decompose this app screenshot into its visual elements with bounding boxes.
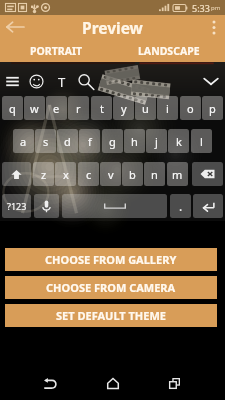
staticText: c — [86, 167, 92, 182]
button[interactable]: Voice input — [34, 194, 59, 218]
staticText: 5:33 — [192, 2, 210, 14]
button[interactable]: s — [35, 129, 56, 153]
button[interactable]: Home — [96, 366, 130, 400]
button[interactable]: LANDSCAPE — [112, 39, 225, 62]
staticText: m — [172, 167, 183, 182]
button[interactable]: Text style — [53, 73, 70, 90]
staticText: x — [63, 167, 69, 182]
button[interactable]: n — [144, 162, 165, 186]
staticText: ?123 — [7, 200, 27, 212]
button[interactable]: y — [113, 96, 134, 120]
button[interactable]: j — [146, 129, 167, 153]
button[interactable]: f — [79, 129, 100, 153]
button[interactable]: Back — [0, 15, 30, 39]
button[interactable]: u — [135, 96, 156, 120]
staticText: p — [209, 101, 216, 116]
button[interactable]: p — [202, 96, 223, 120]
staticText: y — [121, 101, 127, 116]
button[interactable]: Back — [33, 366, 67, 400]
button[interactable]: k — [168, 129, 189, 153]
button[interactable]: l — [191, 129, 212, 153]
button[interactable]: g — [102, 129, 123, 153]
button[interactable]: Shift — [2, 162, 31, 186]
staticText: f — [88, 134, 92, 149]
button[interactable]: e — [46, 96, 67, 120]
button[interactable]: CHOOSE FROM CAMERA — [5, 276, 217, 299]
staticText: i — [166, 101, 169, 116]
button[interactable]: SET DEFAULT THEME — [5, 304, 217, 327]
button[interactable]: Enter — [193, 194, 223, 218]
staticText: . — [179, 198, 183, 214]
staticText: LANDSCAPE — [138, 44, 200, 58]
staticText: h — [131, 134, 138, 149]
staticText: d — [64, 134, 71, 149]
staticText: k — [176, 134, 182, 149]
button[interactable]: v — [100, 162, 121, 186]
button[interactable]: q — [2, 96, 23, 120]
staticText: v — [108, 167, 114, 182]
staticText: CHOOSE FROM GALLERY — [45, 252, 177, 267]
staticText: g — [109, 134, 116, 149]
button[interactable]: Search — [77, 73, 94, 90]
staticText: e — [53, 101, 60, 116]
button[interactable]: CHOOSE FROM GALLERY — [5, 248, 217, 271]
staticText: T — [58, 73, 66, 90]
button[interactable]: z — [33, 162, 54, 186]
button[interactable]: Recent apps — [157, 366, 191, 400]
staticText: r — [76, 101, 81, 116]
button[interactable]: Period — [170, 194, 191, 218]
button[interactable]: m — [167, 162, 188, 186]
staticText: pm — [211, 4, 221, 12]
staticText: l — [200, 134, 203, 149]
button[interactable]: o — [180, 96, 201, 120]
staticText: Preview — [82, 17, 143, 38]
staticText: w — [30, 101, 39, 116]
button[interactable]: PORTRAIT — [0, 39, 112, 62]
staticText: n — [151, 167, 158, 182]
staticText: q — [9, 101, 16, 116]
staticText: j — [155, 134, 158, 149]
button[interactable]: t — [91, 96, 112, 120]
button[interactable]: c — [78, 162, 99, 186]
staticText: SET DEFAULT THEME — [56, 308, 166, 323]
button[interactable]: r — [68, 96, 89, 120]
button[interactable]: Backspace — [192, 162, 223, 186]
button[interactable]: d — [57, 129, 78, 153]
staticText: s — [43, 134, 49, 149]
button[interactable]: i — [157, 96, 178, 120]
button[interactable]: h — [124, 129, 145, 153]
button[interactable]: Hide keyboard — [201, 71, 221, 91]
staticText: u — [142, 101, 149, 116]
staticText: t — [100, 101, 104, 116]
button[interactable]: a — [13, 129, 34, 153]
staticText: PORTRAIT — [30, 44, 83, 58]
staticText: b — [129, 167, 136, 182]
button[interactable]: w — [24, 96, 45, 120]
button[interactable]: Symbols — [2, 194, 31, 218]
staticText: a — [20, 134, 27, 149]
staticText: CHOOSE FROM CAMERA — [46, 280, 176, 295]
button[interactable]: Emoji — [28, 73, 45, 90]
staticText: o — [187, 101, 194, 116]
button[interactable]: More options — [203, 15, 225, 39]
button[interactable]: Space — [62, 194, 167, 218]
staticText: z — [41, 167, 47, 182]
button[interactable]: Menu — [4, 73, 21, 90]
button[interactable]: x — [55, 162, 76, 186]
button[interactable]: b — [122, 162, 143, 186]
